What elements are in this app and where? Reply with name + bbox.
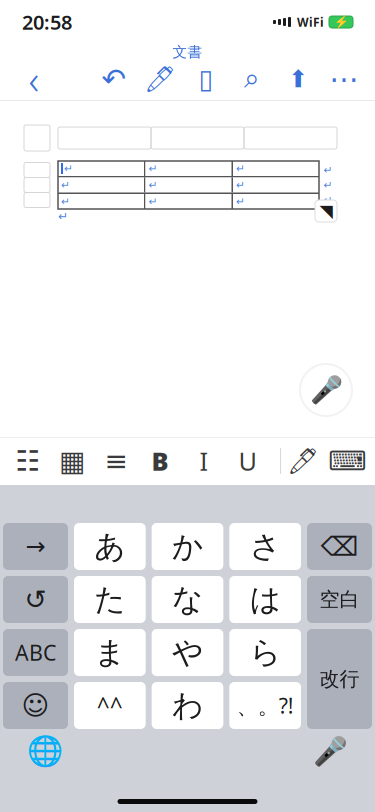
button[interactable]: Hide Keyboard: [325, 439, 369, 483]
staticText: ⌫: [320, 531, 358, 562]
staticText: ↺: [24, 584, 46, 615]
button[interactable]: Emoji: [3, 682, 68, 729]
staticText: ↵: [323, 164, 332, 176]
staticText: ABC: [15, 638, 56, 667]
staticText: ◥: [319, 201, 332, 221]
staticText: な: [172, 581, 203, 618]
staticText: 🌐: [26, 734, 63, 768]
staticText: 空白: [319, 587, 359, 612]
staticText: ☺: [21, 690, 49, 721]
staticText: ⬆: [288, 65, 308, 93]
staticText: ↵: [236, 179, 245, 191]
button[interactable]: や: [152, 629, 223, 676]
staticText: ≡: [104, 445, 127, 477]
button[interactable]: ^^: [74, 682, 146, 729]
button[interactable]: Undo: [3, 576, 68, 623]
button[interactable]: Share: [275, 60, 321, 98]
staticText: ↵: [148, 179, 157, 191]
button[interactable]: Annotate: [137, 60, 183, 98]
staticText: ↵: [236, 195, 245, 207]
staticText: B: [151, 444, 168, 478]
staticText: ま: [94, 634, 125, 671]
staticText: ↵: [61, 179, 70, 191]
staticText: 、。?!: [237, 691, 294, 720]
staticText: ら: [250, 634, 281, 671]
staticText: ☷: [15, 445, 40, 477]
staticText: ▯: [198, 64, 213, 94]
staticText: ⚡: [333, 15, 348, 29]
staticText: ↵: [236, 162, 245, 174]
staticText: U: [238, 444, 257, 478]
staticText: 20:58: [22, 9, 72, 35]
staticText: 🎤: [309, 375, 342, 405]
button[interactable]: More: [321, 60, 367, 98]
button[interactable]: は: [229, 576, 301, 623]
button[interactable]: Italic: [182, 439, 226, 483]
staticText: ↶: [101, 62, 126, 96]
button[interactable]: Next candidate: [3, 523, 68, 570]
staticText: ↵: [61, 195, 70, 207]
staticText: WiFi: [297, 14, 324, 30]
button[interactable]: View Options: [183, 60, 229, 98]
button[interactable]: か: [152, 523, 223, 570]
button[interactable]: 、。?!: [229, 682, 301, 729]
staticText: ↵: [148, 195, 157, 207]
staticText: や: [172, 634, 203, 671]
button[interactable]: Dictate: [305, 729, 355, 773]
staticText: 改行: [319, 667, 359, 691]
button[interactable]: Table cells: [6, 439, 50, 483]
staticText: ⋯: [329, 62, 358, 96]
staticText: I: [199, 444, 208, 478]
staticText: ↵: [64, 162, 73, 174]
button[interactable]: あ: [74, 523, 146, 570]
staticText: か: [172, 528, 203, 565]
button[interactable]: な: [152, 576, 223, 623]
staticText: た: [94, 581, 125, 618]
button[interactable]: Resize table: [315, 200, 337, 222]
button[interactable]: Space: [307, 576, 372, 623]
button[interactable]: Underline: [226, 439, 270, 483]
staticText: ↵: [148, 162, 157, 174]
button[interactable]: わ: [152, 682, 223, 729]
button[interactable]: Return: [307, 629, 372, 729]
button[interactable]: Back: [8, 60, 60, 98]
staticText: →: [25, 533, 45, 560]
button[interactable]: ま: [74, 629, 146, 676]
staticText: ↵: [323, 179, 332, 191]
staticText: わ: [172, 687, 203, 724]
staticText: ⌨: [328, 446, 366, 476]
button[interactable]: Undo: [91, 60, 137, 98]
button[interactable]: Cell format: [94, 439, 138, 483]
staticText: あ: [94, 528, 125, 565]
staticText: さ: [250, 528, 281, 565]
staticText: 文書: [172, 43, 202, 61]
button[interactable]: Next keyboard: [20, 729, 70, 773]
staticText: 🖊: [144, 64, 176, 93]
staticText: ↵: [58, 209, 68, 223]
button[interactable]: た: [74, 576, 146, 623]
button[interactable]: Bold: [138, 439, 182, 483]
staticText: ^^: [97, 690, 123, 720]
button[interactable]: ら: [229, 629, 301, 676]
button[interactable]: Markup: [281, 439, 325, 483]
staticText: ▦: [59, 445, 85, 477]
staticText: ‹: [28, 52, 39, 105]
staticText: ⌕: [244, 65, 260, 93]
button[interactable]: Search: [229, 60, 275, 98]
button[interactable]: ABC: [3, 629, 68, 676]
button[interactable]: Dictate: [299, 363, 353, 417]
staticText: ↵: [323, 194, 332, 206]
button[interactable]: Table: [50, 439, 94, 483]
button[interactable]: さ: [229, 523, 301, 570]
staticText: 🖊: [287, 446, 319, 475]
staticText: 🎤: [312, 735, 347, 767]
staticText: は: [250, 581, 281, 618]
button[interactable]: Delete: [307, 523, 372, 570]
